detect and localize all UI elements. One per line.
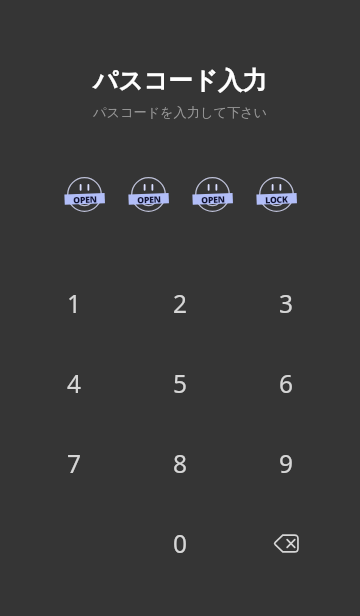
staticText: 9 <box>279 447 294 480</box>
staticText: 0 <box>173 527 188 560</box>
staticText: OPEN <box>201 193 225 206</box>
button[interactable]: 7 <box>21 423 127 503</box>
staticText: 8 <box>173 447 188 480</box>
button[interactable]: 6 <box>233 343 339 423</box>
button[interactable]: 5 <box>127 343 233 423</box>
staticText: 5 <box>173 367 188 400</box>
staticText: 2 <box>173 287 188 320</box>
staticText: LOCK <box>265 194 288 206</box>
button[interactable]: 2 <box>127 263 233 343</box>
staticText: 1 <box>67 287 82 320</box>
staticText: OPEN <box>73 193 97 206</box>
staticText: 4 <box>67 367 82 400</box>
button[interactable]: 0 <box>127 503 233 583</box>
button[interactable]: 4 <box>21 343 127 423</box>
staticText: OPEN <box>137 193 161 206</box>
button[interactable]: 9 <box>233 423 339 503</box>
button[interactable]: 8 <box>127 423 233 503</box>
staticText: 6 <box>279 367 294 400</box>
staticText: パスコード入力 <box>0 65 360 96</box>
staticText: 7 <box>67 447 82 480</box>
button[interactable]: 1 <box>21 263 127 343</box>
staticText: 3 <box>279 287 294 320</box>
staticText: パスコードを入力して下さい <box>0 104 360 121</box>
button[interactable]: 3 <box>233 263 339 343</box>
button[interactable]: Delete <box>233 503 339 583</box>
